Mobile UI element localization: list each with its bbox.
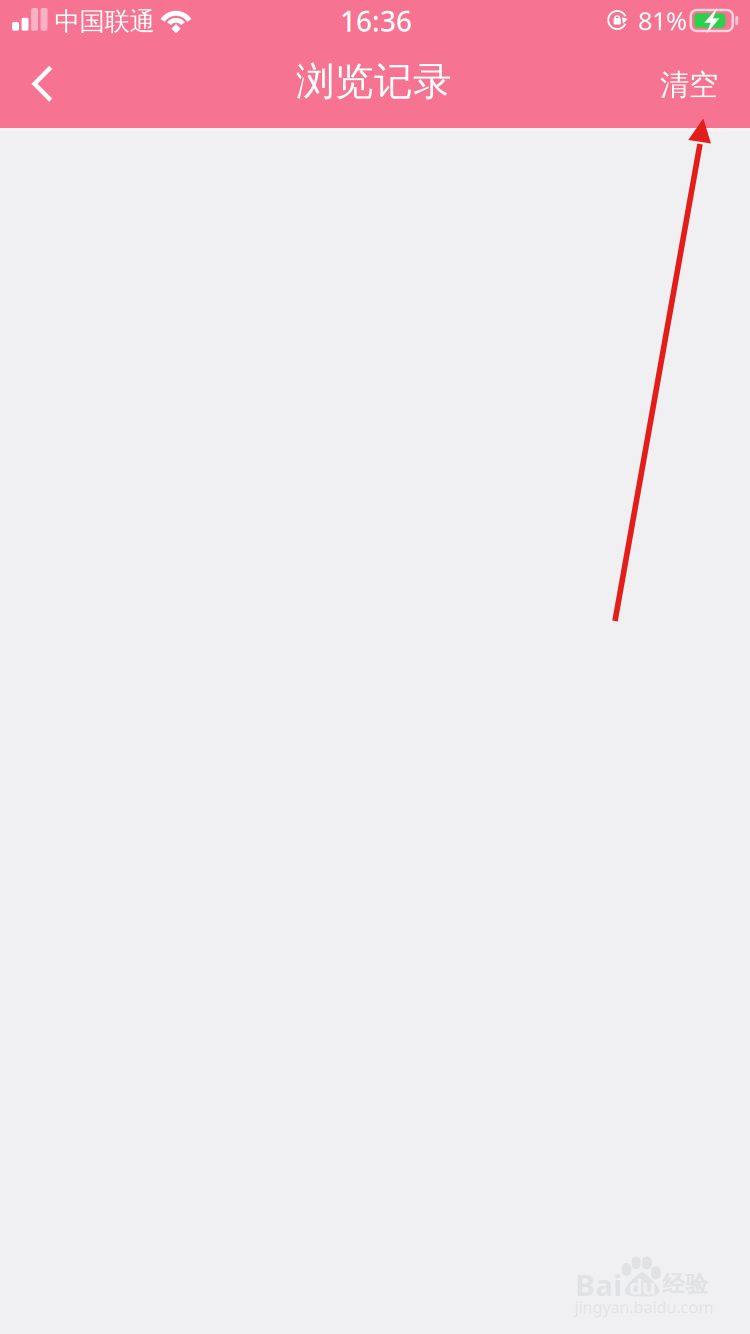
staticText: du [629, 1272, 656, 1301]
staticText: 81% [638, 4, 687, 37]
staticText: jingyan.baidu.com [574, 1296, 713, 1318]
staticText: 浏览记录 [296, 58, 452, 105]
staticText: Bai [575, 1265, 622, 1304]
staticText: 经验 [662, 1270, 708, 1298]
staticText: 16:36 [340, 2, 412, 40]
staticText: 中国联通 [54, 6, 154, 37]
button[interactable]: Back [0, 42, 85, 126]
button[interactable]: 清空 [636, 43, 742, 127]
staticText: 清空 [660, 67, 718, 103]
